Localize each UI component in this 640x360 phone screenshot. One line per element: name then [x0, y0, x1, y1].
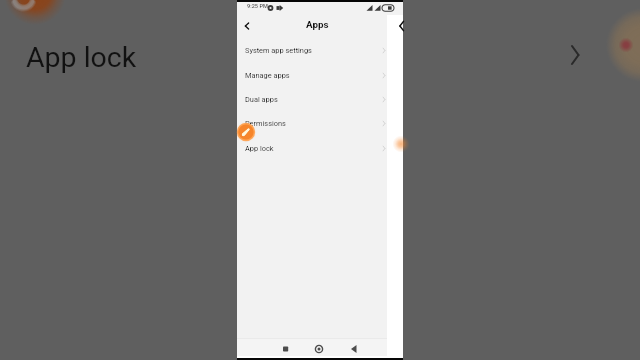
button[interactable]: App lock	[237, 136, 403, 160]
staticText: Dual apps	[245, 95, 278, 104]
staticText: Apps	[306, 19, 329, 30]
staticText: System app settings	[245, 46, 312, 55]
staticText: App lock	[245, 144, 274, 153]
button[interactable]: Permissions	[237, 111, 403, 135]
button[interactable]: Dual apps	[237, 87, 403, 111]
button[interactable]: Manage apps	[237, 63, 403, 87]
staticText: Manage apps	[245, 71, 290, 80]
staticText: 9:25 PM	[247, 3, 268, 10]
staticText: Permissions	[245, 119, 286, 128]
button[interactable]: Back	[238, 17, 256, 35]
staticText: App lock	[26, 41, 137, 74]
button[interactable]: Next	[564, 42, 590, 68]
button[interactable]: System app settings	[237, 38, 403, 62]
